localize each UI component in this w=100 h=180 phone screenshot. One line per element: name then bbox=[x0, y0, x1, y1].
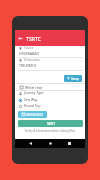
staticText: Verify all information before clicking N… bbox=[15, 129, 85, 133]
staticText: Wheel chair bbox=[25, 86, 43, 90]
staticText: HYDERABAD bbox=[19, 51, 39, 56]
staticText: One Way bbox=[24, 98, 38, 102]
button[interactable]: 08/04/2020 bbox=[18, 111, 47, 118]
button[interactable]: Wheel chair bbox=[15, 84, 85, 91]
staticText: TIRUPATHI bbox=[19, 63, 36, 68]
button[interactable]: Source bbox=[15, 46, 85, 56]
staticText: NEXT bbox=[47, 122, 55, 126]
button[interactable]: One Way bbox=[15, 97, 85, 103]
button[interactable]: NEXT bbox=[18, 120, 83, 127]
staticText: Source bbox=[24, 46, 34, 50]
staticText: Round Trip bbox=[24, 104, 41, 108]
button[interactable]: Home bbox=[46, 139, 55, 148]
button[interactable]: Recent apps bbox=[65, 139, 74, 148]
staticText: Journey Type bbox=[24, 91, 44, 95]
staticText: 08/04/2020 bbox=[26, 113, 43, 117]
button[interactable]: Swap bbox=[64, 75, 82, 82]
staticText: Destination bbox=[24, 58, 41, 62]
button[interactable]: Back bbox=[26, 139, 35, 148]
button[interactable]: Destination bbox=[15, 58, 85, 68]
staticText: TSRTC bbox=[26, 35, 42, 42]
button[interactable]: Back bbox=[15, 30, 26, 46]
staticText: Swap bbox=[71, 77, 80, 81]
button[interactable]: Round Trip bbox=[15, 103, 85, 109]
